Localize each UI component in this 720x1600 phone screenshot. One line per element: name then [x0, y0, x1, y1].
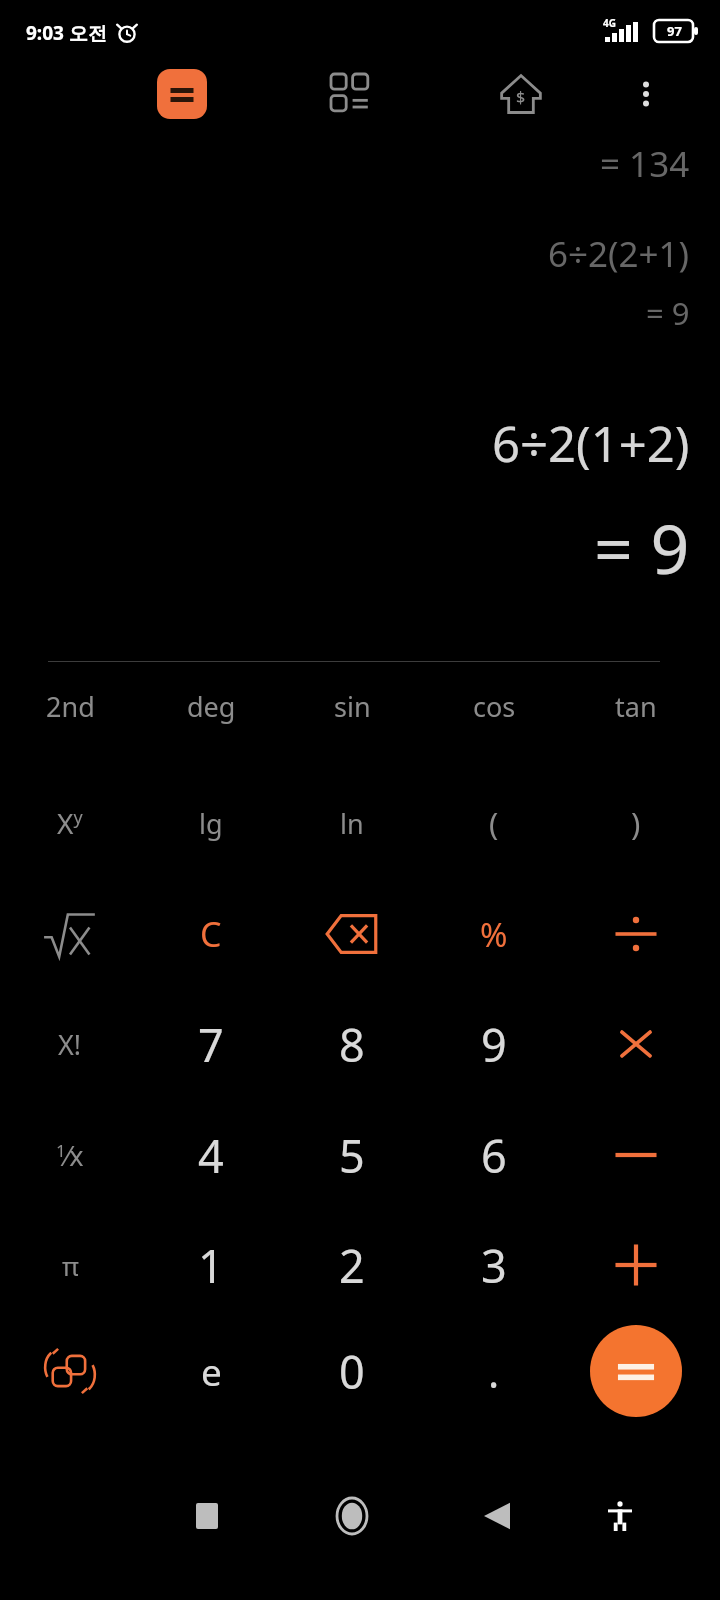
button[interactable]: e	[147, 1321, 275, 1421]
button[interactable]: Calculator	[157, 69, 207, 119]
staticText: 1⁄x	[56, 1137, 84, 1174]
staticText: 6	[481, 1125, 507, 1186]
button[interactable]: Xy	[6, 773, 134, 873]
button[interactable]: ln	[288, 773, 416, 873]
button[interactable]: 5	[288, 1105, 416, 1205]
button[interactable]: Backspace	[288, 884, 416, 984]
button[interactable]: %	[430, 884, 558, 984]
button[interactable]: 1⁄x	[6, 1105, 134, 1205]
staticText: 0	[339, 1341, 365, 1402]
staticText: π	[62, 1248, 79, 1283]
button[interactable]: Multiply	[572, 994, 700, 1094]
button[interactable]: (	[430, 773, 558, 873]
button[interactable]: 2	[288, 1215, 416, 1315]
button[interactable]: .	[430, 1321, 558, 1421]
staticText: 97	[667, 22, 682, 40]
button[interactable]: Divide	[572, 884, 700, 984]
staticText: )	[631, 802, 641, 844]
button[interactable]: sin	[288, 656, 416, 756]
button[interactable]: Recent apps	[181, 1490, 233, 1542]
button[interactable]: 8	[288, 994, 416, 1094]
staticText: 8	[339, 1014, 365, 1075]
button[interactable]: Accessibility menu	[594, 1490, 646, 1542]
staticText: Xy	[57, 804, 83, 842]
staticText: 7	[198, 1014, 224, 1075]
staticText: 2	[339, 1235, 365, 1296]
button[interactable]: More options	[621, 69, 671, 119]
staticText: 1	[198, 1235, 224, 1296]
staticText: lg	[199, 805, 223, 842]
button[interactable]: π	[6, 1215, 134, 1315]
button[interactable]: C	[147, 884, 275, 984]
staticText: C	[200, 911, 222, 957]
button[interactable]: deg	[147, 656, 275, 756]
staticText: e	[201, 1346, 222, 1396]
staticText: 3	[481, 1235, 507, 1296]
staticText: = 9	[646, 292, 690, 334]
staticText: X!	[58, 1026, 82, 1063]
button[interactable]: Minus	[572, 1105, 700, 1205]
button[interactable]: Plus	[572, 1215, 700, 1315]
staticText: 2nd	[46, 688, 95, 725]
staticText: ln	[340, 805, 364, 842]
staticText: 4G	[603, 16, 616, 30]
staticText: 9:03 오전	[26, 20, 107, 46]
button[interactable]: Loan calculator	[496, 69, 546, 119]
staticText: 6÷2(1+2)	[492, 410, 690, 477]
button[interactable]: X!	[6, 994, 134, 1094]
staticText: .	[488, 1343, 500, 1400]
button[interactable]: )	[572, 773, 700, 873]
button[interactable]: Converters	[326, 69, 376, 119]
button[interactable]: 1	[147, 1215, 275, 1315]
staticText: = 9	[594, 501, 690, 594]
staticText: 6÷2(2+1)	[548, 230, 690, 278]
staticText: %	[480, 912, 508, 957]
button[interactable]: cos	[430, 656, 558, 756]
staticText: 4	[198, 1125, 224, 1186]
button[interactable]: lg	[147, 773, 275, 873]
button[interactable]: 0	[288, 1321, 416, 1421]
staticText: sin	[334, 688, 371, 725]
staticText: tan	[615, 688, 657, 725]
staticText: (	[489, 802, 499, 844]
button[interactable]: Home	[326, 1490, 378, 1542]
button[interactable]: 9	[430, 994, 558, 1094]
staticText: 5	[339, 1125, 365, 1186]
button[interactable]: 6	[430, 1105, 558, 1205]
staticText: cos	[473, 688, 516, 725]
staticText: deg	[187, 688, 236, 725]
button[interactable]: 2nd	[6, 656, 134, 756]
button[interactable]: Convert units	[6, 1321, 134, 1421]
staticText: $	[516, 86, 526, 108]
button[interactable]: 3	[430, 1215, 558, 1315]
button[interactable]: Square root	[6, 884, 134, 984]
button[interactable]: 4	[147, 1105, 275, 1205]
button[interactable]: 7	[147, 994, 275, 1094]
staticText: 9	[481, 1014, 507, 1075]
staticText: = 134	[600, 140, 690, 188]
button[interactable]: Equals	[590, 1325, 682, 1417]
button[interactable]: Back	[471, 1490, 523, 1542]
button[interactable]: tan	[572, 656, 700, 756]
